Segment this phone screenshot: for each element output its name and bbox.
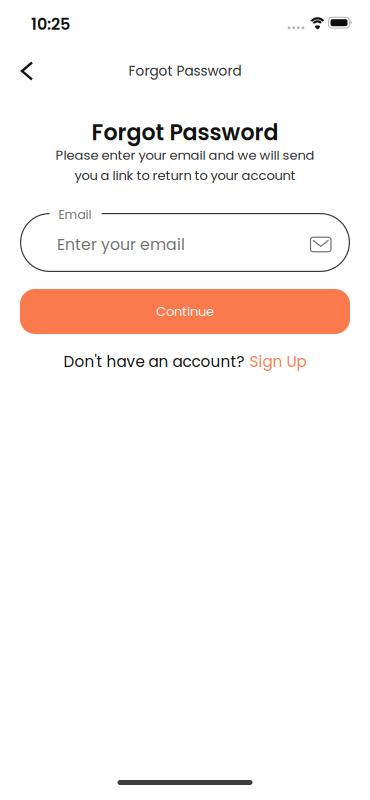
- staticText: Email: [58, 206, 91, 223]
- button[interactable]: Sign Up: [249, 351, 306, 372]
- staticText: Continue: [156, 302, 214, 321]
- staticText: you a link to return to your account: [74, 166, 295, 185]
- staticText: Forgot Password: [128, 61, 241, 80]
- staticText: Don't have an account?: [63, 351, 244, 372]
- staticText: 10:25: [31, 13, 70, 35]
- button[interactable]: Back: [5, 49, 49, 93]
- staticText: Sign Up: [249, 351, 306, 372]
- staticText: Enter your email: [57, 233, 185, 255]
- staticText: Forgot Password: [91, 117, 278, 148]
- button[interactable]: Continue: [20, 289, 350, 334]
- staticText: Please enter your email and we will send: [55, 146, 314, 164]
